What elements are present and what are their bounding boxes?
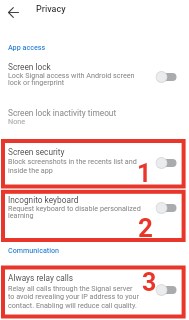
staticText: Privacy: [36, 4, 66, 15]
staticText: 1: [137, 159, 152, 188]
staticText: Screen security: [8, 147, 65, 157]
button[interactable]: [0, 0, 28, 26]
button[interactable]: Always relay calls: [0, 270, 189, 316]
button[interactable]: Screen security: [0, 144, 189, 180]
staticText: None: [8, 117, 26, 125]
staticText: Communication: [8, 246, 60, 254]
button[interactable]: Screen lock: [0, 58, 189, 90]
staticText: 2: [138, 213, 153, 243]
staticText: Block screenshots in the recents list an…: [8, 157, 137, 175]
staticText: Relay all calls through the Signal serve…: [8, 284, 140, 309]
staticText: Screen lock: [8, 62, 51, 72]
staticText: Screen lock inactivity timeout: [8, 108, 117, 118]
button[interactable]: Incognito keyboard: [0, 191, 189, 225]
button[interactable]: Screen lock inactivity timeout: [0, 104, 189, 129]
staticText: Lock Signal access with Android screen l…: [8, 71, 135, 87]
staticText: Request keyboard to disable personalized…: [8, 204, 141, 220]
staticText: Always relay calls: [8, 273, 74, 283]
staticText: Incognito keyboard: [8, 195, 79, 205]
staticText: 3: [142, 268, 157, 297]
staticText: App access: [8, 43, 46, 51]
